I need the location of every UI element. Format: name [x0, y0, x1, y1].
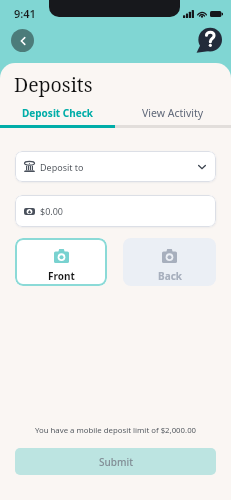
- staticText: Deposits: [14, 71, 93, 98]
- staticText: $0.00: [40, 205, 64, 217]
- button[interactable]: Deposit to: [15, 151, 216, 182]
- staticText: View Activity: [142, 106, 204, 120]
- button[interactable]: Back: [11, 29, 34, 52]
- button[interactable]: Back: [123, 238, 216, 286]
- staticText: Deposit Check: [22, 106, 94, 120]
- button[interactable]: View Activity: [115, 105, 231, 128]
- staticText: 9:41: [14, 6, 36, 21]
- staticText: Deposit to: [40, 161, 84, 173]
- staticText: You have a mobile deposit limit of $2,00…: [0, 425, 231, 436]
- staticText: Front: [48, 269, 75, 283]
- button[interactable]: Deposit Check: [0, 105, 115, 128]
- button[interactable]: Front: [15, 238, 107, 286]
- staticText: Submit: [99, 455, 133, 469]
- button[interactable]: $0.00: [15, 195, 216, 227]
- staticText: Back: [158, 269, 182, 283]
- button[interactable]: Submit: [15, 448, 216, 475]
- button[interactable]: Help: [196, 28, 222, 54]
